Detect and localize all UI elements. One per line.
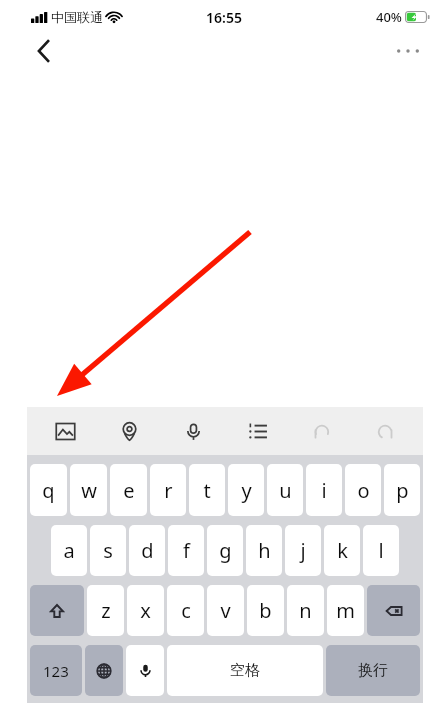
staticText: w xyxy=(81,477,97,504)
button[interactable]: 空格 xyxy=(167,645,323,696)
staticText: z xyxy=(101,597,111,624)
staticText: 换行 xyxy=(358,661,388,680)
staticText: 16:55 xyxy=(206,8,242,27)
staticText: u xyxy=(279,477,292,504)
button[interactable]: Voice input xyxy=(161,407,225,455)
staticText: k xyxy=(337,537,348,564)
button[interactable]: k xyxy=(324,525,360,576)
button[interactable]: Shift xyxy=(30,585,84,636)
button[interactable]: l xyxy=(363,525,399,576)
button[interactable]: h xyxy=(246,525,282,576)
button[interactable]: x xyxy=(127,585,164,636)
staticText: g xyxy=(219,537,232,564)
button[interactable]: c xyxy=(167,585,204,636)
staticText: r xyxy=(164,477,173,504)
button[interactable]: i xyxy=(306,464,342,516)
staticText: b xyxy=(259,597,272,624)
button[interactable]: Numbered list xyxy=(225,407,289,455)
staticText: 中国联通 xyxy=(51,9,103,25)
button[interactable]: Voice input xyxy=(126,645,164,696)
staticText: t xyxy=(203,477,211,504)
button[interactable]: 123 xyxy=(30,645,82,696)
button[interactable]: d xyxy=(129,525,165,576)
button[interactable]: j xyxy=(285,525,321,576)
staticText: i xyxy=(321,477,327,504)
button[interactable]: w xyxy=(70,464,107,516)
staticText: e xyxy=(123,477,135,504)
button[interactable]: Insert location xyxy=(97,407,161,455)
button[interactable]: Redo xyxy=(353,407,417,455)
button[interactable]: f xyxy=(168,525,204,576)
staticText: f xyxy=(183,537,190,564)
staticText: o xyxy=(357,477,370,504)
button[interactable]: n xyxy=(287,585,324,636)
staticText: j xyxy=(300,537,306,564)
staticText: n xyxy=(299,597,312,624)
button[interactable]: t xyxy=(189,464,225,516)
button[interactable]: o xyxy=(345,464,381,516)
staticText: 123 xyxy=(43,661,69,681)
button[interactable]: Insert image xyxy=(33,407,97,455)
button[interactable]: m xyxy=(327,585,364,636)
staticText: v xyxy=(220,597,231,624)
button[interactable]: q xyxy=(30,464,67,516)
staticText: a xyxy=(63,537,75,564)
button[interactable]: e xyxy=(110,464,147,516)
button[interactable]: Undo xyxy=(289,407,353,455)
staticText: 空格 xyxy=(230,661,260,680)
button[interactable]: Backspace xyxy=(367,585,420,636)
staticText: l xyxy=(378,537,384,564)
button[interactable]: Switch keyboard xyxy=(85,645,123,696)
staticText: q xyxy=(42,477,55,504)
button[interactable]: More options xyxy=(391,34,425,68)
staticText: x xyxy=(140,597,151,624)
button[interactable]: 换行 xyxy=(326,645,420,696)
staticText: d xyxy=(141,537,154,564)
staticText: s xyxy=(103,537,113,564)
staticText: m xyxy=(336,597,355,624)
button[interactable]: u xyxy=(267,464,303,516)
button[interactable]: z xyxy=(87,585,124,636)
button[interactable]: y xyxy=(228,464,264,516)
button[interactable]: b xyxy=(247,585,284,636)
button[interactable]: a xyxy=(51,525,87,576)
staticText: c xyxy=(181,597,191,624)
button[interactable]: r xyxy=(150,464,186,516)
staticText: 40% xyxy=(376,8,402,26)
staticText: y xyxy=(241,477,252,504)
button[interactable]: p xyxy=(384,464,420,516)
button[interactable]: Back xyxy=(26,34,60,68)
staticText: h xyxy=(258,537,271,564)
button[interactable]: g xyxy=(207,525,243,576)
button[interactable]: v xyxy=(207,585,244,636)
staticText: p xyxy=(396,477,409,504)
button[interactable]: s xyxy=(90,525,126,576)
